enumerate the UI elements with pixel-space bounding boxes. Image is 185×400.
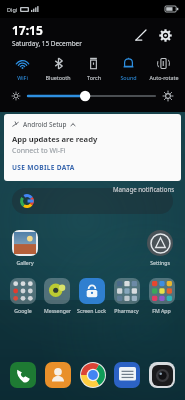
button[interactable]: Pharmacy [109,278,144,314]
staticText: Messenger [44,307,71,314]
button[interactable]: USE MOBILE DATA [12,162,75,173]
staticText: 17:15 [12,22,43,38]
button[interactable]: Settings [155,25,175,45]
button[interactable]: Bluetooth [40,57,76,81]
button[interactable]: Sound [111,57,146,81]
button[interactable]: Messenger [40,278,74,314]
button[interactable] [28,89,155,103]
staticText: FM App [152,307,171,314]
staticText: Sound [120,74,137,81]
staticText: Screen Lock [77,307,106,314]
staticText: Digi [7,6,18,13]
button[interactable]: Torch [76,57,111,81]
staticText: App updates are ready [12,134,98,144]
button[interactable]: Messages [112,360,142,390]
button[interactable]: Google search [12,188,173,214]
other: Google search [20,194,34,208]
staticText: Pharmacy [114,307,139,314]
button[interactable]: Contacts [43,360,73,390]
button[interactable]: Chrome [78,360,108,390]
button[interactable]: Phone [8,360,38,390]
staticText: Manage notifications [113,185,175,193]
staticText: Gallery [16,259,34,266]
staticText: Android Setup [23,120,67,129]
staticText: Google [14,307,32,314]
button[interactable]: Settings [143,230,177,266]
staticText: Auto-rotate [149,74,179,81]
staticText: Settings [150,259,170,266]
button[interactable]: Android Setup [4,114,181,181]
other: High brightness [161,89,175,103]
button[interactable]: WiFi [4,57,40,81]
button[interactable]: Screen Lock [74,278,109,314]
button[interactable]: Manage notifications [111,184,177,194]
staticText: Connect to Wi-Fi [12,146,66,156]
staticText: WiFi [17,74,28,81]
staticText: USE MOBILE DATA [12,163,75,172]
button[interactable]: Gallery [8,230,42,266]
other: Low brightness [10,90,22,102]
staticText: Torch [87,74,101,81]
button[interactable]: Auto-rotate [146,57,181,81]
button[interactable]: Google [6,278,40,314]
button[interactable]: Edit [131,26,149,44]
button[interactable]: Camera [147,360,177,390]
staticText: Saturday, 15 December [12,39,82,48]
staticText: Bluetooth [45,74,71,81]
button[interactable]: FM App [144,278,179,314]
